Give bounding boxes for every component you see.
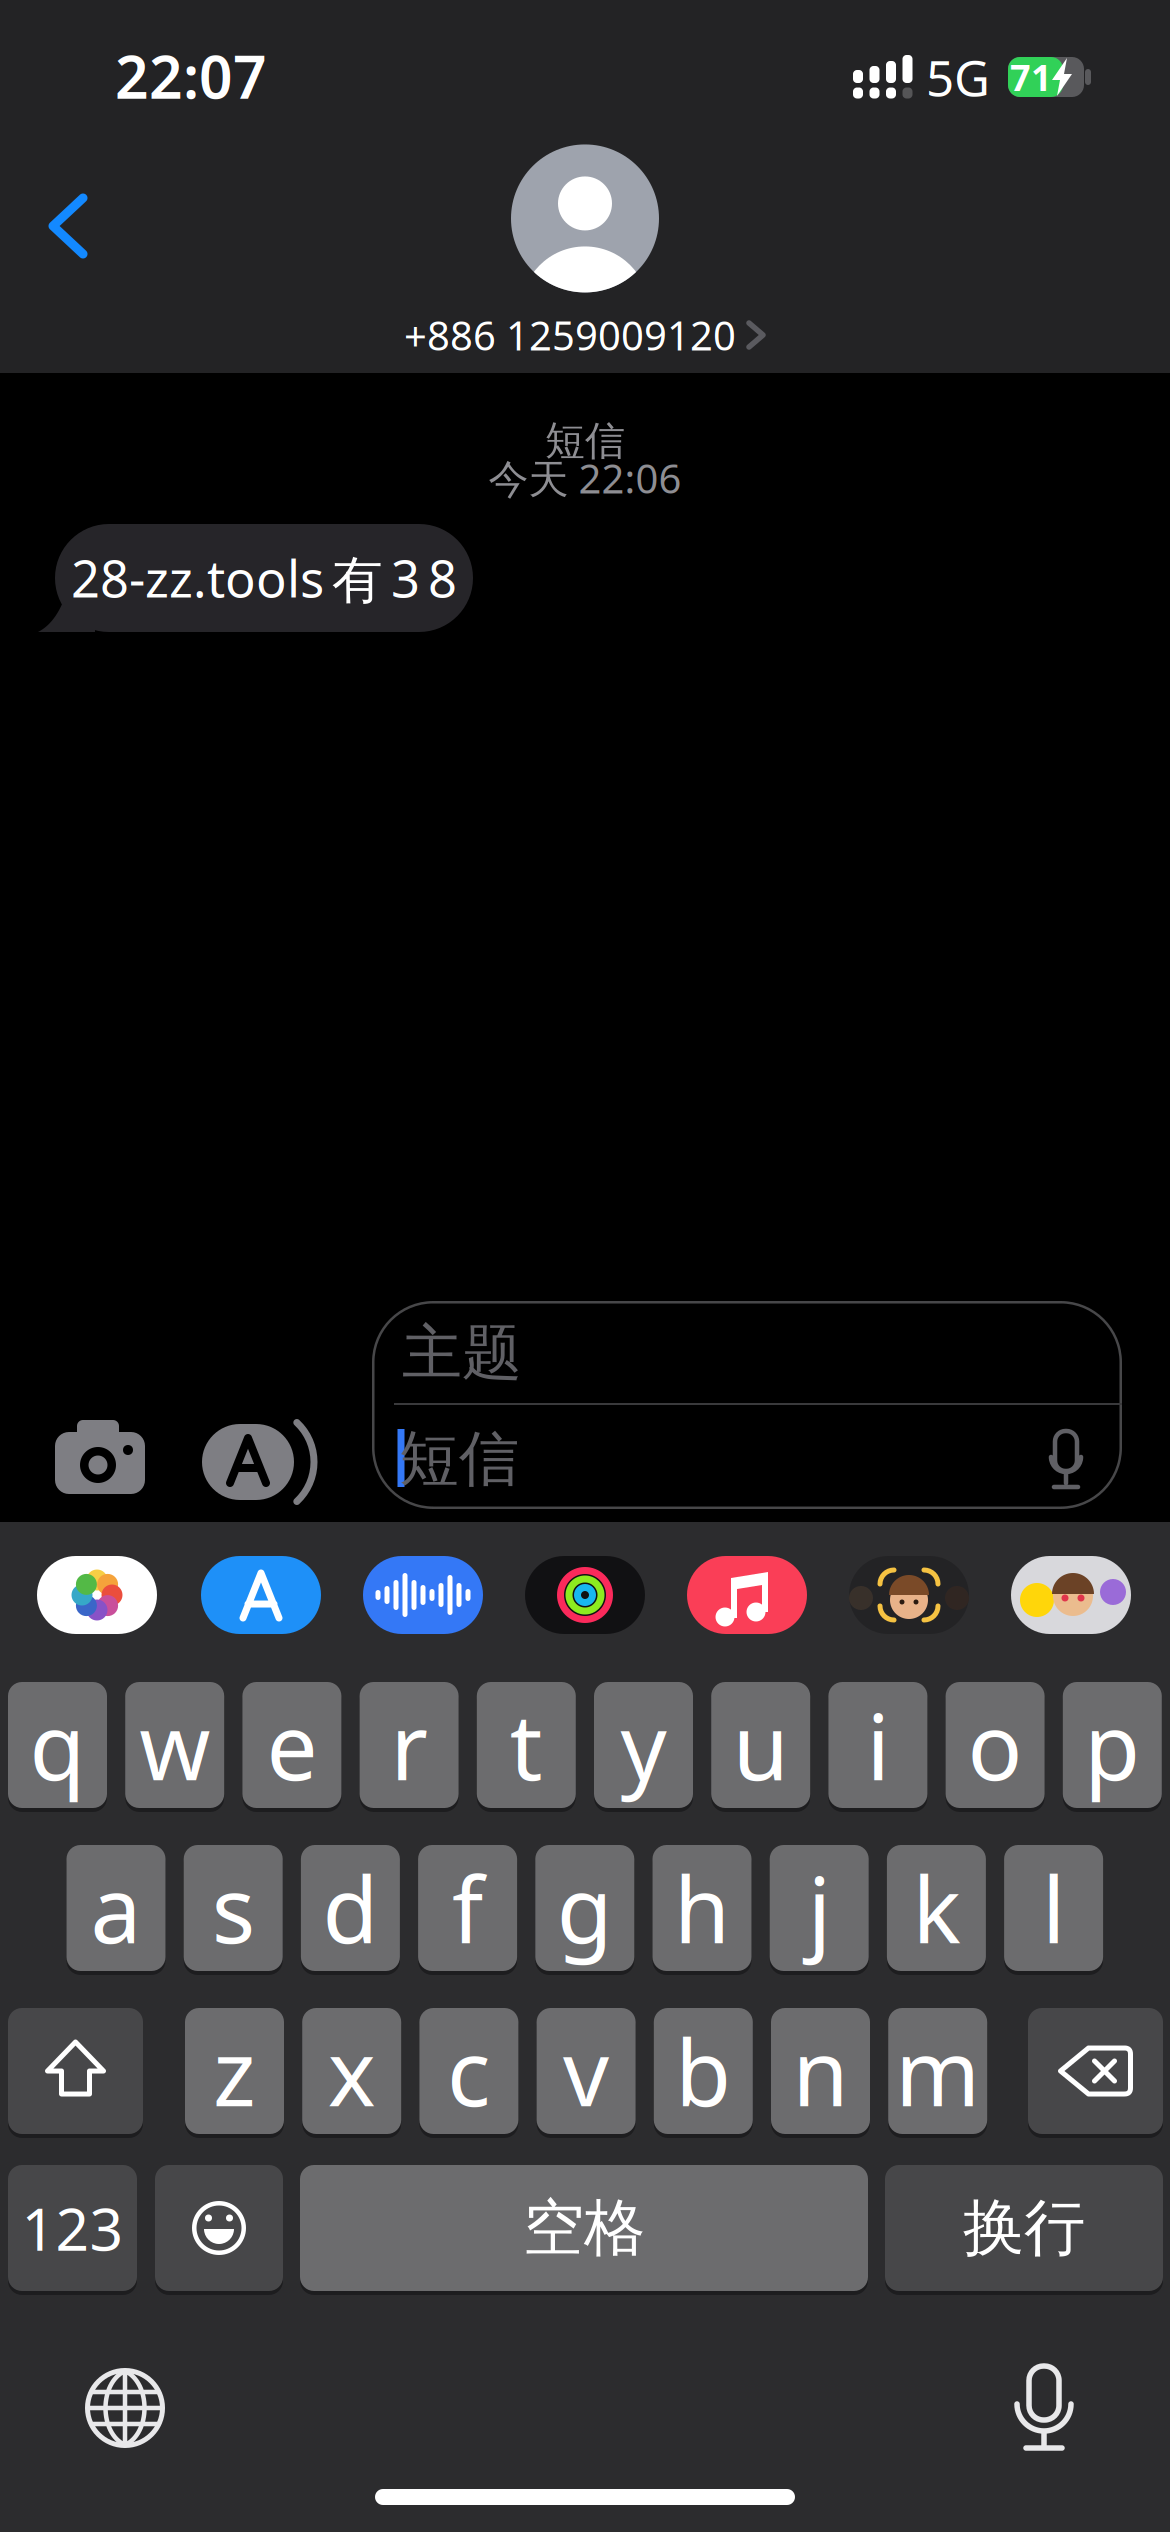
button[interactable]: x — [302, 2008, 401, 2134]
staticText: 123 — [21, 2189, 123, 2267]
staticText: 主题 — [402, 1316, 522, 1390]
button[interactable]: j — [770, 1845, 869, 1971]
button[interactable]: App Store — [201, 1556, 321, 1634]
staticText: 换行 — [963, 2190, 1085, 2266]
staticText: g — [557, 1848, 613, 1968]
staticText: 短信 — [545, 416, 625, 465]
button[interactable]: Memoji — [849, 1556, 969, 1634]
staticText: b — [675, 2011, 731, 2131]
button[interactable]: Message field — [372, 1301, 1122, 1509]
button[interactable]: p — [1063, 1682, 1162, 1808]
button[interactable]: Dictation — [1007, 2366, 1081, 2450]
button[interactable]: b — [654, 2008, 753, 2134]
staticText: w — [139, 1685, 210, 1805]
staticText: s — [212, 1848, 255, 1968]
button[interactable]: Photos — [37, 1556, 157, 1634]
button[interactable]: 换行 — [885, 2165, 1163, 2291]
staticText: 空格 — [523, 2190, 645, 2266]
staticText: c — [447, 2011, 491, 2131]
button[interactable]: y — [594, 1682, 693, 1808]
button[interactable]: Audio — [363, 1556, 483, 1634]
button[interactable]: Activity — [525, 1556, 645, 1634]
button[interactable]: Music — [687, 1556, 807, 1634]
staticText: h — [674, 1848, 730, 1968]
button[interactable]: s — [184, 1845, 283, 1971]
staticText: 5G — [926, 44, 990, 110]
button[interactable]: 空格 — [300, 2165, 868, 2291]
staticText: v — [563, 2011, 609, 2131]
button[interactable]: Stickers — [1011, 1556, 1131, 1634]
button[interactable]: h — [652, 1845, 751, 1971]
button[interactable]: Emoji — [155, 2165, 283, 2291]
staticText: k — [912, 1848, 960, 1968]
staticText: o — [968, 1685, 1023, 1805]
button[interactable]: g — [535, 1845, 634, 1971]
button[interactable]: w — [125, 1682, 224, 1808]
staticText: r — [391, 1685, 428, 1805]
button[interactable]: a — [66, 1845, 165, 1971]
staticText: +886 1259009120 — [404, 308, 736, 361]
button[interactable]: n — [771, 2008, 870, 2134]
staticText: x — [328, 2011, 376, 2131]
button[interactable]: Camera — [55, 1418, 145, 1498]
staticText: 71 — [1010, 53, 1052, 101]
staticText: 22:07 — [115, 37, 267, 115]
button[interactable]: 123 — [8, 2165, 137, 2291]
button[interactable]: k — [887, 1845, 986, 1971]
staticText: l — [1042, 1848, 1065, 1968]
staticText: u — [733, 1685, 789, 1805]
button[interactable]: m — [888, 2008, 987, 2134]
staticText: p — [1084, 1685, 1140, 1805]
button[interactable]: d — [301, 1845, 400, 1971]
staticText: n — [792, 2011, 848, 2131]
button[interactable]: Back — [45, 192, 91, 260]
button[interactable]: Apps — [202, 1424, 322, 1500]
button[interactable]: e — [242, 1682, 341, 1808]
staticText: z — [213, 2011, 256, 2131]
button[interactable]: c — [419, 2008, 518, 2134]
button[interactable]: Delete — [1028, 2008, 1163, 2134]
button[interactable]: Next keyboard — [85, 2368, 165, 2448]
button[interactable]: t — [477, 1682, 576, 1808]
button[interactable]: l — [1004, 1845, 1103, 1971]
staticText: i — [866, 1685, 889, 1805]
staticText: m — [895, 2011, 980, 2131]
staticText: t — [510, 1685, 543, 1805]
button[interactable]: +886 1259009120 — [404, 144, 766, 361]
staticText: d — [322, 1848, 378, 1968]
staticText: e — [266, 1685, 317, 1805]
staticText: y — [620, 1685, 666, 1805]
staticText: 今天 22:06 — [488, 451, 681, 504]
button[interactable]: q — [8, 1682, 107, 1808]
button[interactable]: Shift — [8, 2008, 143, 2134]
staticText: a — [90, 1848, 141, 1968]
button[interactable]: r — [360, 1682, 459, 1808]
button[interactable]: z — [185, 2008, 284, 2134]
button[interactable]: o — [946, 1682, 1045, 1808]
button[interactable]: v — [537, 2008, 636, 2134]
button[interactable]: i — [828, 1682, 927, 1808]
staticText: 28-zz.tools 有 3 8 — [71, 544, 457, 612]
staticText: f — [452, 1848, 483, 1968]
button[interactable]: u — [711, 1682, 810, 1808]
staticText: 短信 — [399, 1422, 519, 1496]
staticText: j — [808, 1848, 831, 1968]
button[interactable]: f — [418, 1845, 517, 1971]
staticText: q — [29, 1685, 85, 1805]
